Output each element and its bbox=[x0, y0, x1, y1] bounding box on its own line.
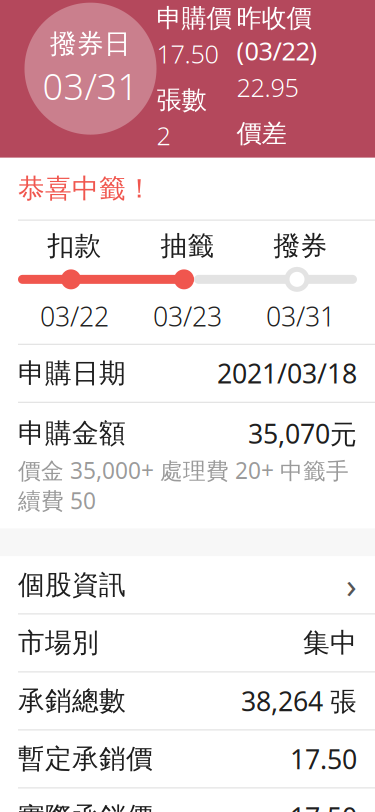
staticText: 撥券 bbox=[273, 230, 327, 262]
staticText: › bbox=[346, 562, 357, 608]
staticText: 市場別 bbox=[18, 626, 99, 659]
staticText: 申購價 bbox=[156, 3, 231, 34]
staticText: 扣款 bbox=[47, 230, 101, 262]
staticText: 抽籤 bbox=[160, 230, 214, 262]
staticText: 集中 bbox=[303, 626, 357, 659]
staticText: 實際承銷價 bbox=[18, 800, 153, 812]
staticText: 暫定承銷價 bbox=[18, 742, 153, 775]
staticText: 2 bbox=[156, 118, 170, 152]
staticText: 昨收價(03/22) bbox=[236, 3, 317, 67]
staticText: 35,070元 bbox=[248, 416, 357, 451]
staticText: 17.50 bbox=[290, 799, 357, 812]
staticText: 03/22 bbox=[40, 298, 109, 334]
staticText: 撥券日 bbox=[50, 27, 131, 60]
staticText: 2021/03/18 bbox=[217, 356, 357, 391]
staticText: 03/23 bbox=[153, 298, 222, 334]
staticText: 17.50 bbox=[290, 741, 357, 777]
staticText: 價差 bbox=[236, 118, 286, 149]
staticText: 10,900元 (31.14%) bbox=[236, 152, 337, 219]
staticText: 03/31 bbox=[42, 62, 138, 110]
staticText: 申購日期 bbox=[18, 357, 126, 390]
staticText: 22.95 bbox=[236, 70, 298, 104]
staticText: 張數 bbox=[156, 84, 206, 115]
staticText: 38,264 張 bbox=[241, 683, 357, 719]
staticText: 03/31 bbox=[266, 298, 335, 334]
staticText: 恭喜中籤！ bbox=[18, 172, 153, 205]
staticText: 承銷總數 bbox=[18, 684, 126, 717]
staticText: 申購金額 bbox=[18, 417, 126, 450]
staticText: 價金 35,000+ 處理費 20+ 中籤手續費 50 bbox=[18, 455, 349, 515]
staticText: 17.50 bbox=[156, 37, 218, 70]
staticText: 個股資訊 bbox=[18, 568, 126, 601]
button[interactable]: 個股資訊 bbox=[0, 556, 375, 613]
